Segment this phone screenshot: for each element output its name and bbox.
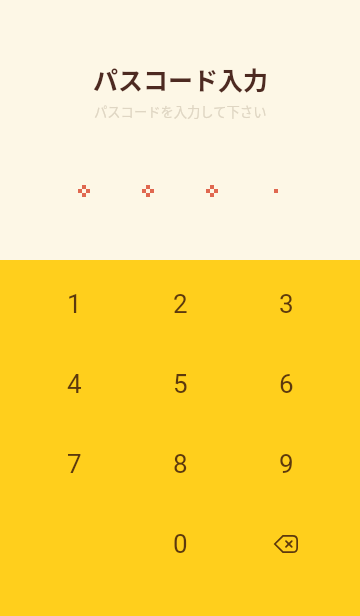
button[interactable]: 6 xyxy=(233,344,339,424)
staticText: 9 xyxy=(279,449,294,479)
staticText: 7 xyxy=(67,449,82,479)
button[interactable]: 0 xyxy=(127,504,233,584)
button[interactable]: Delete xyxy=(233,504,339,584)
staticText: 2 xyxy=(173,289,188,319)
button[interactable]: 5 xyxy=(127,344,233,424)
staticText: 3 xyxy=(279,289,294,319)
staticText: 8 xyxy=(173,449,188,479)
button[interactable]: 9 xyxy=(233,424,339,504)
staticText: 0 xyxy=(173,529,188,559)
staticText: 4 xyxy=(67,369,82,399)
button[interactable]: 1 xyxy=(21,264,127,344)
staticText: 6 xyxy=(279,369,294,399)
button[interactable]: 7 xyxy=(21,424,127,504)
button[interactable]: 8 xyxy=(127,424,233,504)
staticText: パスコードを入力して下さい xyxy=(94,102,267,121)
button[interactable]: 4 xyxy=(21,344,127,424)
button[interactable]: 2 xyxy=(127,264,233,344)
staticText: 5 xyxy=(173,369,188,399)
staticText: 1 xyxy=(67,289,82,319)
staticText: パスコード入力 xyxy=(93,61,269,97)
button[interactable]: 3 xyxy=(233,264,339,344)
